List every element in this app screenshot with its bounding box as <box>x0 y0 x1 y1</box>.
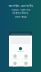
staticText: নিরাপদ উপায় <box>12 12 28 15</box>
staticText: এখন হাতে <box>14 15 26 19</box>
staticText: অনলাইনে কেনাকাটার <box>8 4 32 8</box>
staticText: সবচেয়ে সহজ এবং <box>11 8 30 12</box>
